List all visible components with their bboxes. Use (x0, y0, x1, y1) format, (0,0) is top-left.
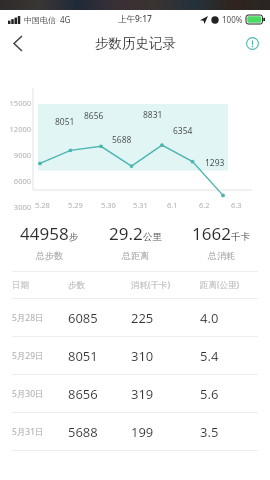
staticText: 步数历史记录 (95, 35, 176, 52)
staticText: 6.2 (199, 200, 210, 210)
staticText: 步 (69, 231, 79, 243)
staticText: 8656 (84, 110, 104, 122)
button[interactable]: Info (234, 28, 270, 58)
staticText: 29.2 (109, 222, 143, 245)
staticText: 1293 (205, 157, 225, 169)
staticText: 6.1 (167, 200, 178, 210)
staticText: 5688 (68, 423, 131, 441)
staticText: 6000 (13, 176, 31, 186)
button[interactable]: 5月30日 (0, 375, 270, 412)
staticText: 3000 (13, 202, 31, 212)
staticText: 日期 (12, 280, 68, 291)
staticText: 44958 (20, 222, 69, 245)
staticText: 5.4 (200, 347, 258, 365)
staticText: 5月28日 (12, 312, 68, 324)
staticText: 5.29 (68, 200, 83, 210)
button[interactable]: 5月31日 (0, 413, 270, 450)
staticText: 5月31日 (12, 426, 68, 438)
button[interactable]: 1662 (178, 222, 264, 261)
staticText: 100% (222, 14, 243, 25)
staticText: 6354 (173, 125, 193, 137)
staticText: 6.3 (231, 200, 242, 210)
staticText: 8831 (143, 109, 163, 121)
staticText: 15000 (9, 98, 31, 108)
button[interactable]: Back (0, 28, 36, 58)
staticText: 6085 (68, 309, 131, 327)
staticText: 4G (60, 14, 71, 25)
staticText: 5.6 (200, 385, 258, 403)
staticText: 5.31 (133, 200, 148, 210)
staticText: 中国电信 (24, 15, 56, 25)
staticText: 总步数 (36, 250, 63, 261)
staticText: 310 (131, 347, 200, 365)
staticText: 总消耗 (208, 250, 235, 261)
button[interactable]: 5月29日 (0, 337, 270, 374)
button[interactable]: 5月28日 (0, 299, 270, 336)
staticText: 上午9:17 (118, 13, 152, 25)
staticText: 5.28 (35, 200, 50, 210)
staticText: 8051 (55, 116, 75, 128)
staticText: 5688 (112, 134, 132, 146)
staticText: 距离(公里) (200, 279, 258, 291)
staticText: 319 (131, 385, 200, 403)
staticText: 5.30 (101, 200, 116, 210)
button[interactable]: 44958 (6, 222, 92, 261)
staticText: 1662 (192, 222, 231, 245)
staticText: 5月29日 (12, 350, 68, 362)
staticText: 12000 (9, 124, 31, 134)
staticText: 3.5 (200, 423, 258, 441)
staticText: 225 (131, 309, 200, 327)
staticText: 步数 (68, 280, 131, 291)
staticText: 消耗(千卡) (131, 279, 200, 291)
staticText: 总距离 (122, 250, 149, 261)
staticText: 公里 (143, 231, 162, 243)
staticText: 8656 (68, 385, 131, 403)
staticText: 199 (131, 423, 200, 441)
staticText: 9000 (13, 150, 31, 160)
staticText: 5月30日 (12, 388, 68, 400)
staticText: 8051 (68, 347, 131, 365)
staticText: 4.0 (200, 309, 258, 327)
staticText: 千卡 (231, 231, 250, 243)
button[interactable]: 29.2 (92, 222, 178, 261)
